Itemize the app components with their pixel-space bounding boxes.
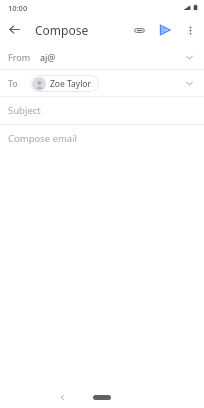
staticText: Compose email (8, 132, 78, 145)
button[interactable]: From (0, 44, 204, 69)
staticText: Subject (8, 104, 41, 117)
button[interactable]: Expand (178, 72, 200, 94)
staticText: From (8, 51, 31, 63)
button[interactable]: Zoe Taylor (30, 75, 99, 92)
staticText: aj@ (40, 51, 56, 63)
button[interactable]: Back (52, 387, 72, 407)
staticText: Zoe Taylor (50, 78, 92, 90)
button[interactable]: Subject (0, 97, 204, 124)
button[interactable]: Attach file (126, 17, 152, 43)
button[interactable]: Send (152, 17, 178, 43)
button[interactable]: To (0, 70, 204, 96)
button[interactable]: Expand (178, 46, 200, 68)
button[interactable]: Back (0, 15, 29, 44)
button[interactable]: Home (93, 395, 111, 400)
button[interactable]: Compose email (0, 125, 204, 151)
staticText: Compose (35, 22, 89, 38)
staticText: To (8, 77, 18, 89)
button[interactable]: More options (178, 18, 202, 42)
staticText: 10:00 (8, 3, 28, 13)
